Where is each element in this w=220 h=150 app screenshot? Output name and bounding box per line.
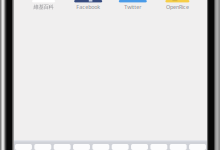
staticText: OpenRice <box>166 3 189 11</box>
staticText: 維基百科 <box>34 4 54 10</box>
staticText: Facebook <box>76 3 100 11</box>
button[interactable]: Facebook <box>76 0 101 12</box>
button[interactable]: Twitter <box>120 0 145 12</box>
button[interactable]: 維基百科 <box>31 0 56 12</box>
button[interactable]: OpenRice <box>165 0 190 12</box>
staticText: Twitter <box>124 3 141 11</box>
